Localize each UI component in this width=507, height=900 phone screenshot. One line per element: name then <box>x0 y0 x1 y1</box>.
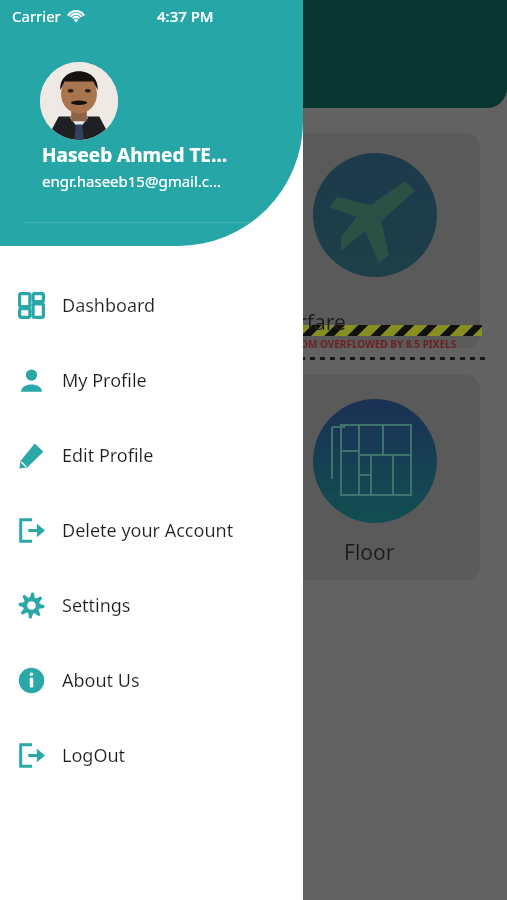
staticText: rfare <box>298 308 346 337</box>
button[interactable]: Settings <box>0 568 303 643</box>
staticText: 4:37 PM <box>157 6 214 26</box>
staticText: Floor <box>344 538 395 567</box>
button[interactable]: Dashboard <box>0 268 303 343</box>
button[interactable]: LogOut <box>0 718 303 793</box>
staticText: My Profile <box>62 368 147 393</box>
button[interactable] <box>22 375 480 580</box>
staticText: Carrier <box>12 6 61 26</box>
button[interactable]: Edit Profile <box>0 418 303 493</box>
staticText: About Us <box>62 668 140 693</box>
button[interactable]: My Profile <box>0 343 303 418</box>
button[interactable]: Delete your Account <box>0 493 303 568</box>
staticText: LogOut <box>62 743 126 768</box>
staticText: Delete your Account <box>62 518 234 543</box>
button[interactable]: Profile photo <box>40 62 118 140</box>
button[interactable]: About Us <box>0 643 303 718</box>
staticText: engr.haseeb15@gmail.c… <box>42 171 221 191</box>
staticText: OM OVERFLOWED BY 8.5 PIXELS <box>300 337 457 351</box>
staticText: Dashboard <box>62 293 156 318</box>
staticText: Haseeb Ahmed TE… <box>42 142 228 168</box>
button[interactable] <box>22 133 480 348</box>
staticText: Edit Profile <box>62 443 154 468</box>
staticText: Settings <box>62 593 131 618</box>
